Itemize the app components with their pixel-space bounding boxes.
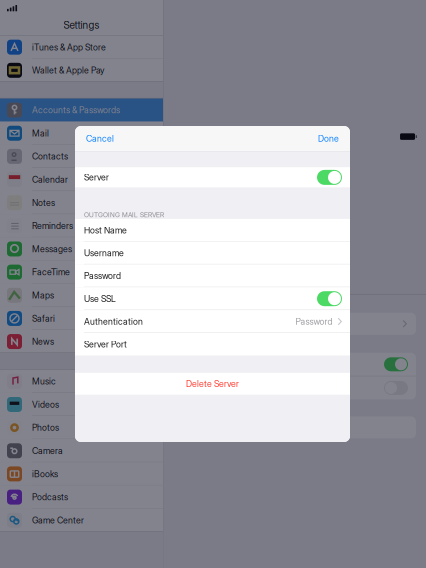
button[interactable]: Game Center [0,509,163,532]
button[interactable]: Safari [0,307,163,330]
staticText: Camera [32,445,63,456]
staticText: Safari [32,313,55,324]
button[interactable]: Password [75,264,350,287]
button[interactable]: Wallet & Apple Pay [0,59,163,82]
staticText: Notes [204,383,227,393]
staticText: FaceTime [32,267,70,277]
button[interactable]: Messages [0,237,163,260]
staticText: Videos [32,399,59,410]
button[interactable]: Mail [175,353,416,376]
button[interactable]: Host Name [75,219,350,242]
staticText: Authentication [84,316,143,327]
button[interactable]: iBooks [0,462,163,485]
button[interactable]: Notes [0,191,163,214]
staticText: Username [84,248,124,258]
button[interactable]: iTunes & App Store [0,36,163,59]
staticText: Maps [32,290,54,301]
button[interactable]: Reminders [0,214,163,237]
staticText: iTunes & App Store [32,42,106,52]
staticText: Host Name [84,225,127,236]
button[interactable]: Done [310,126,350,151]
staticText: OUTGOING MAIL SERVER [84,211,164,219]
button[interactable]: Calendar [0,168,163,191]
staticText: Contacts [32,151,68,162]
button[interactable]: Maps [0,284,163,307]
staticText: Settings [63,19,99,31]
staticText: Messages [32,244,72,254]
staticText: News [32,336,54,347]
staticText: Server Port [84,339,127,350]
staticText: Password [295,316,332,327]
button[interactable]: Server [75,167,350,188]
button[interactable]: Podcasts [0,485,163,509]
staticText: Calendar [32,174,68,185]
button[interactable]: Contacts [0,145,163,168]
staticText: Accounts & Passwords [32,105,120,115]
button[interactable]: Notes [175,376,416,399]
staticText: Music [32,376,56,387]
staticText: iBooks [32,469,58,479]
staticText: Use SSL [84,293,116,304]
button[interactable]: Accounts & Passwords [0,98,163,122]
staticText: Mail [32,128,49,138]
button[interactable]: Videos [0,393,163,416]
staticText: IMAP [183,303,199,311]
staticText: Notes [32,197,55,208]
button[interactable]: Cancel [75,126,122,151]
button[interactable]: Account [175,313,416,335]
staticText: Delete Server [186,378,239,389]
staticText: Reminders [32,220,73,231]
button[interactable]: Use SSL [75,287,350,310]
staticText: Done [318,133,339,144]
button[interactable]: Authentication [75,310,350,333]
staticText: Cancel [86,133,114,144]
button[interactable]: Username [75,242,350,264]
button[interactable]: Music [0,370,163,393]
staticText: Password [84,271,121,281]
staticText: Game Center [32,515,84,525]
button[interactable]: Photos [0,416,163,439]
button[interactable]: Camera [0,439,163,462]
button[interactable]: Mail [0,122,163,145]
staticText: Server [84,172,109,183]
button[interactable]: FaceTime [0,260,163,284]
button[interactable]: News [0,330,163,353]
button[interactable]: Server Port [75,333,350,356]
staticText: Wallet & Apple Pay [32,65,105,76]
button[interactable]: Delete Server [75,373,350,395]
staticText: Podcasts [32,492,68,502]
staticText: Photos [32,422,59,433]
